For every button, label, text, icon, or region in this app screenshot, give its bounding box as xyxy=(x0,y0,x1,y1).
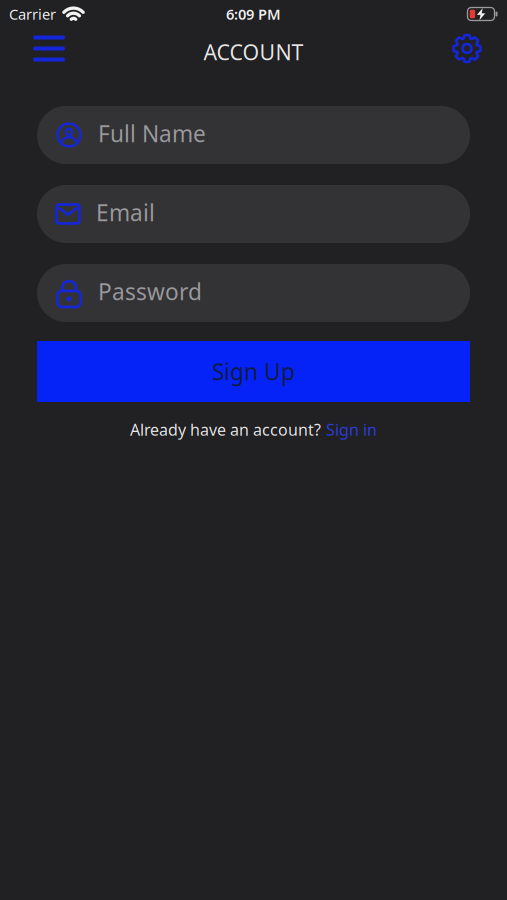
staticText: Sign Up xyxy=(212,356,295,386)
staticText: Already have an account? xyxy=(130,419,321,440)
button[interactable]: Menu xyxy=(33,35,65,61)
button[interactable]: Settings xyxy=(453,34,481,62)
button[interactable]: Full Name xyxy=(37,106,470,164)
button[interactable]: Sign Up xyxy=(37,341,470,402)
staticText: 6:09 PM xyxy=(226,4,281,24)
staticText: Carrier xyxy=(9,4,56,24)
button[interactable]: Email xyxy=(37,185,470,243)
staticText: Sign in xyxy=(326,419,377,440)
staticText: Email xyxy=(96,197,155,227)
staticText: ACCOUNT xyxy=(203,38,303,66)
button[interactable]: Sign in xyxy=(326,419,377,440)
button[interactable]: Password xyxy=(37,264,470,322)
staticText: Full Name xyxy=(98,118,206,148)
staticText: Password xyxy=(98,276,202,306)
